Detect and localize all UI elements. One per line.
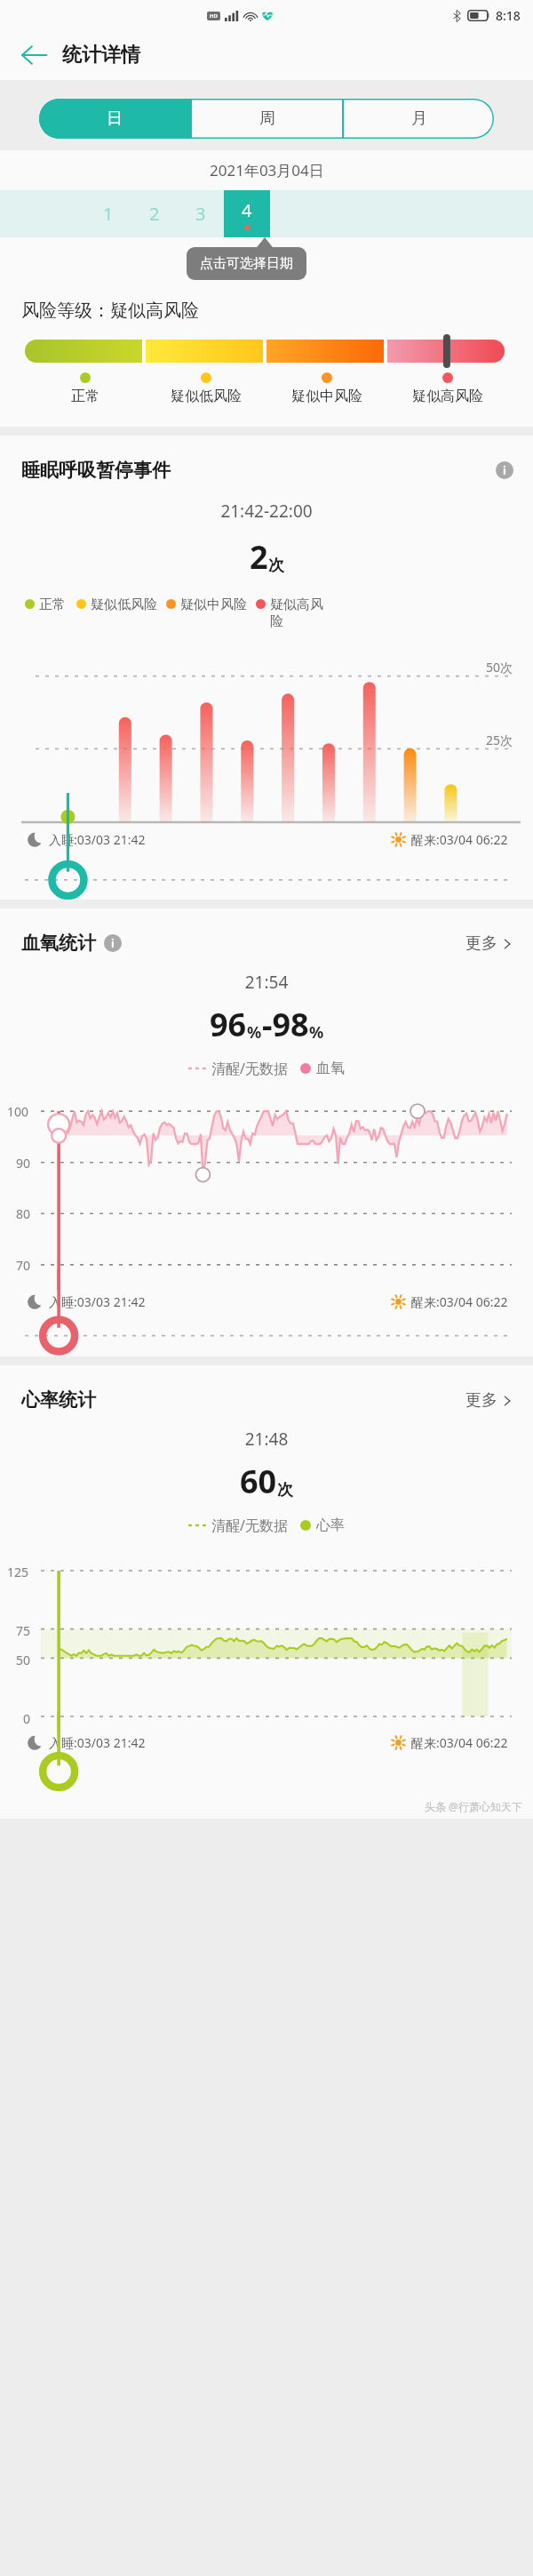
staticText: % xyxy=(309,1021,324,1044)
staticText: 更多 xyxy=(465,933,497,954)
staticText: 8:18 xyxy=(496,7,521,24)
staticText: 血氧 xyxy=(316,1060,345,1077)
staticText: 头条 @行萧心知天下 xyxy=(425,1799,522,1813)
staticText: 正常 xyxy=(39,596,66,613)
button[interactable]: 月 xyxy=(344,99,494,139)
staticText: 睡眠呼吸暂停事件 xyxy=(21,459,171,482)
staticText: 统计详情 xyxy=(62,43,140,68)
staticText: 次 xyxy=(268,556,284,576)
staticText: 疑似中风险 xyxy=(291,388,362,405)
staticText: HD xyxy=(210,12,218,20)
staticText: 心率统计 xyxy=(21,1388,96,1412)
staticText: 疑似低风险 xyxy=(171,388,242,405)
staticText: 疑似低风险 xyxy=(91,596,157,613)
staticText: 点击可选择日期 xyxy=(200,255,293,272)
staticText: 清醒/无数据 xyxy=(211,1059,288,1078)
button[interactable]: Info xyxy=(496,461,513,479)
staticText: 25次 xyxy=(486,732,513,748)
staticText: 2 xyxy=(250,535,268,579)
button[interactable]: 4 xyxy=(224,190,270,237)
staticText: 正常 xyxy=(71,388,99,405)
staticText: 醒来:03/04 06:22 xyxy=(411,831,508,848)
staticText: 80 xyxy=(16,1205,31,1222)
staticText: 1 xyxy=(103,202,114,226)
staticText: 70 xyxy=(16,1257,31,1274)
button[interactable]: 2 xyxy=(131,190,178,237)
staticText: 日 xyxy=(107,108,123,129)
staticText: 100 xyxy=(7,1103,29,1120)
staticText: 次 xyxy=(277,1480,293,1500)
staticText: 周 xyxy=(259,108,275,129)
staticText: 入睡:03/03 21:42 xyxy=(49,1293,146,1310)
staticText: i xyxy=(503,462,506,478)
staticText: 清醒/无数据 xyxy=(211,1516,288,1535)
staticText: 50 xyxy=(16,1652,31,1668)
staticText: 风险等级：疑似高风险 xyxy=(21,300,199,322)
staticText: 0 xyxy=(23,1710,31,1727)
staticText: 入睡:03/03 21:42 xyxy=(49,831,146,848)
button[interactable]: 3 xyxy=(178,190,224,237)
staticText: % xyxy=(247,1021,262,1044)
button[interactable]: 更多 xyxy=(465,1390,513,1411)
staticText: 血氧统计 xyxy=(21,932,96,955)
staticText: 4 xyxy=(242,198,252,222)
staticText: 125 xyxy=(7,1564,29,1580)
staticText: 月 xyxy=(411,108,427,129)
staticText: 21:48 xyxy=(0,1428,533,1451)
staticText: 60 xyxy=(240,1460,277,1503)
button[interactable]: Back xyxy=(18,39,50,71)
staticText: 3 xyxy=(195,202,206,226)
staticText: 2021年03月04日 xyxy=(210,160,324,180)
button[interactable]: 日 xyxy=(39,99,190,139)
staticText: 醒来:03/04 06:22 xyxy=(411,1734,508,1751)
staticText: 疑似高风险 xyxy=(412,388,483,405)
staticText: 入睡:03/03 21:42 xyxy=(49,1734,146,1751)
staticText: 75 xyxy=(16,1622,31,1639)
staticText: i xyxy=(111,935,115,951)
button[interactable]: 1 xyxy=(85,190,131,237)
staticText: -98 xyxy=(262,1003,309,1046)
staticText: 心率 xyxy=(316,1516,345,1534)
staticText: 21:42-22:00 xyxy=(0,500,533,523)
staticText: 21:54 xyxy=(0,971,533,994)
button[interactable]: 周 xyxy=(192,99,342,139)
staticText: 96 xyxy=(210,1003,247,1046)
staticText: 更多 xyxy=(465,1390,497,1411)
staticText: 90 xyxy=(16,1155,31,1172)
staticText: 疑似中风险 xyxy=(180,596,247,613)
staticText: 2 xyxy=(149,202,160,226)
staticText: 疑似高风 险 xyxy=(270,596,323,630)
staticText: 50次 xyxy=(486,659,513,676)
staticText: 醒来:03/04 06:22 xyxy=(411,1293,508,1310)
button[interactable]: 更多 xyxy=(465,933,513,954)
button[interactable]: Info xyxy=(104,934,122,952)
